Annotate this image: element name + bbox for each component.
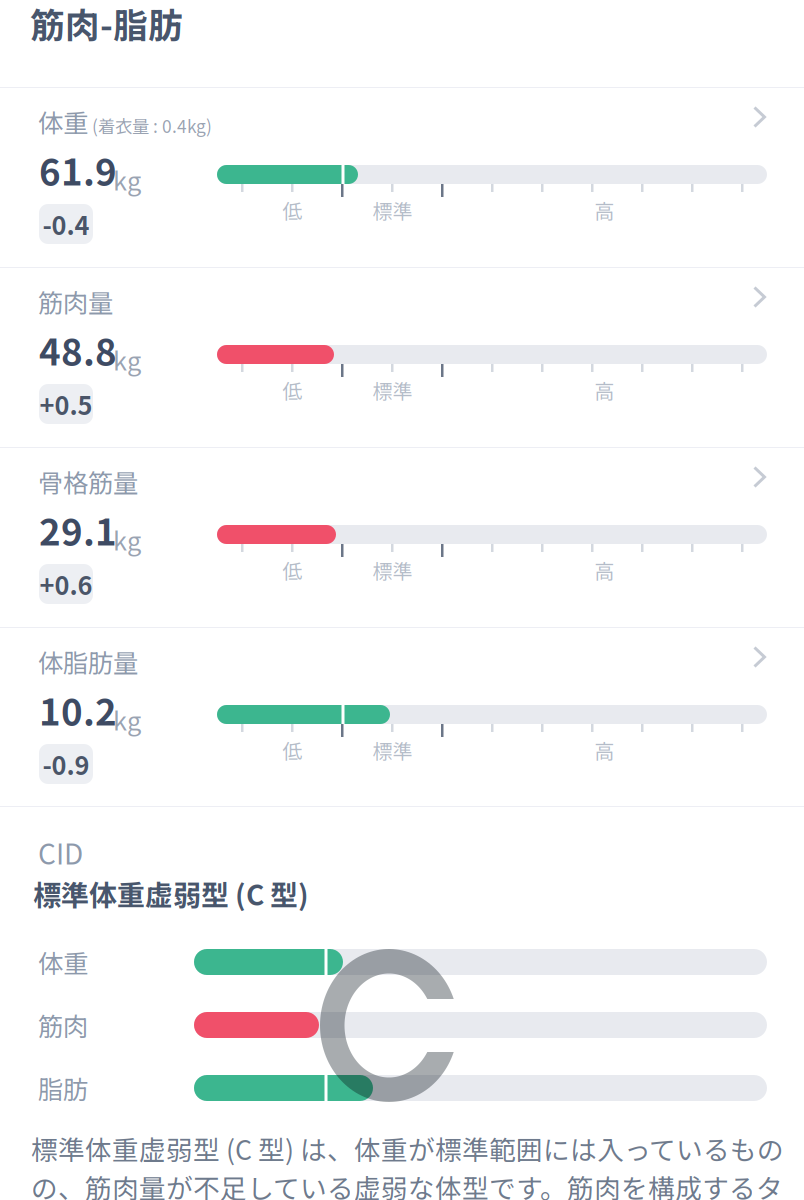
staticText: +0.6 bbox=[39, 566, 92, 602]
staticText: 高 bbox=[594, 195, 614, 224]
staticText: kg bbox=[113, 521, 141, 558]
button[interactable]: 体脂肪量 bbox=[0, 628, 804, 807]
staticText: 筋肉量 bbox=[38, 283, 113, 320]
staticText: 標準体重虚弱型 (C 型) は、体重が標準範囲には入っているものの、筋肉量が不足… bbox=[31, 1129, 784, 1200]
staticText: kg bbox=[113, 341, 141, 378]
staticText: 低 bbox=[282, 555, 302, 584]
staticText: 標準 bbox=[372, 735, 412, 764]
staticText: 低 bbox=[282, 195, 302, 224]
staticText: 48.8 bbox=[39, 323, 117, 376]
staticText: 標準 bbox=[372, 375, 412, 404]
staticText: 体脂肪量 bbox=[38, 643, 138, 680]
staticText: 高 bbox=[594, 735, 614, 764]
staticText: 61.9 bbox=[39, 143, 117, 196]
staticText: (着衣量 : 0.4kg) bbox=[92, 113, 212, 138]
staticText: 体重 bbox=[38, 103, 88, 140]
staticText: 標準 bbox=[372, 195, 412, 224]
staticText: 標準 bbox=[372, 555, 412, 584]
staticText: kg bbox=[113, 161, 141, 198]
staticText: 脂肪 bbox=[38, 1070, 88, 1106]
button[interactable]: 筋肉量 bbox=[0, 268, 804, 447]
staticText: 筋肉-脂肪 bbox=[30, 0, 183, 48]
staticText: +0.5 bbox=[39, 386, 92, 422]
staticText: -0.4 bbox=[42, 206, 89, 242]
staticText: kg bbox=[113, 701, 141, 738]
button[interactable]: 骨格筋量 bbox=[0, 448, 804, 627]
staticText: 高 bbox=[594, 375, 614, 404]
staticText: 体重 bbox=[38, 944, 88, 980]
staticText: 10.2 bbox=[39, 683, 117, 736]
staticText: 筋肉 bbox=[38, 1007, 88, 1043]
staticText: 低 bbox=[282, 735, 302, 764]
staticText: 高 bbox=[594, 555, 614, 584]
button[interactable]: 体重 bbox=[0, 88, 804, 267]
staticText: CID bbox=[38, 832, 83, 872]
staticText: 低 bbox=[282, 375, 302, 404]
staticText: 29.1 bbox=[39, 503, 117, 556]
staticText: -0.9 bbox=[42, 746, 89, 782]
staticText: 骨格筋量 bbox=[38, 463, 138, 500]
staticText: 標準体重虚弱型 (C 型) bbox=[33, 873, 309, 913]
